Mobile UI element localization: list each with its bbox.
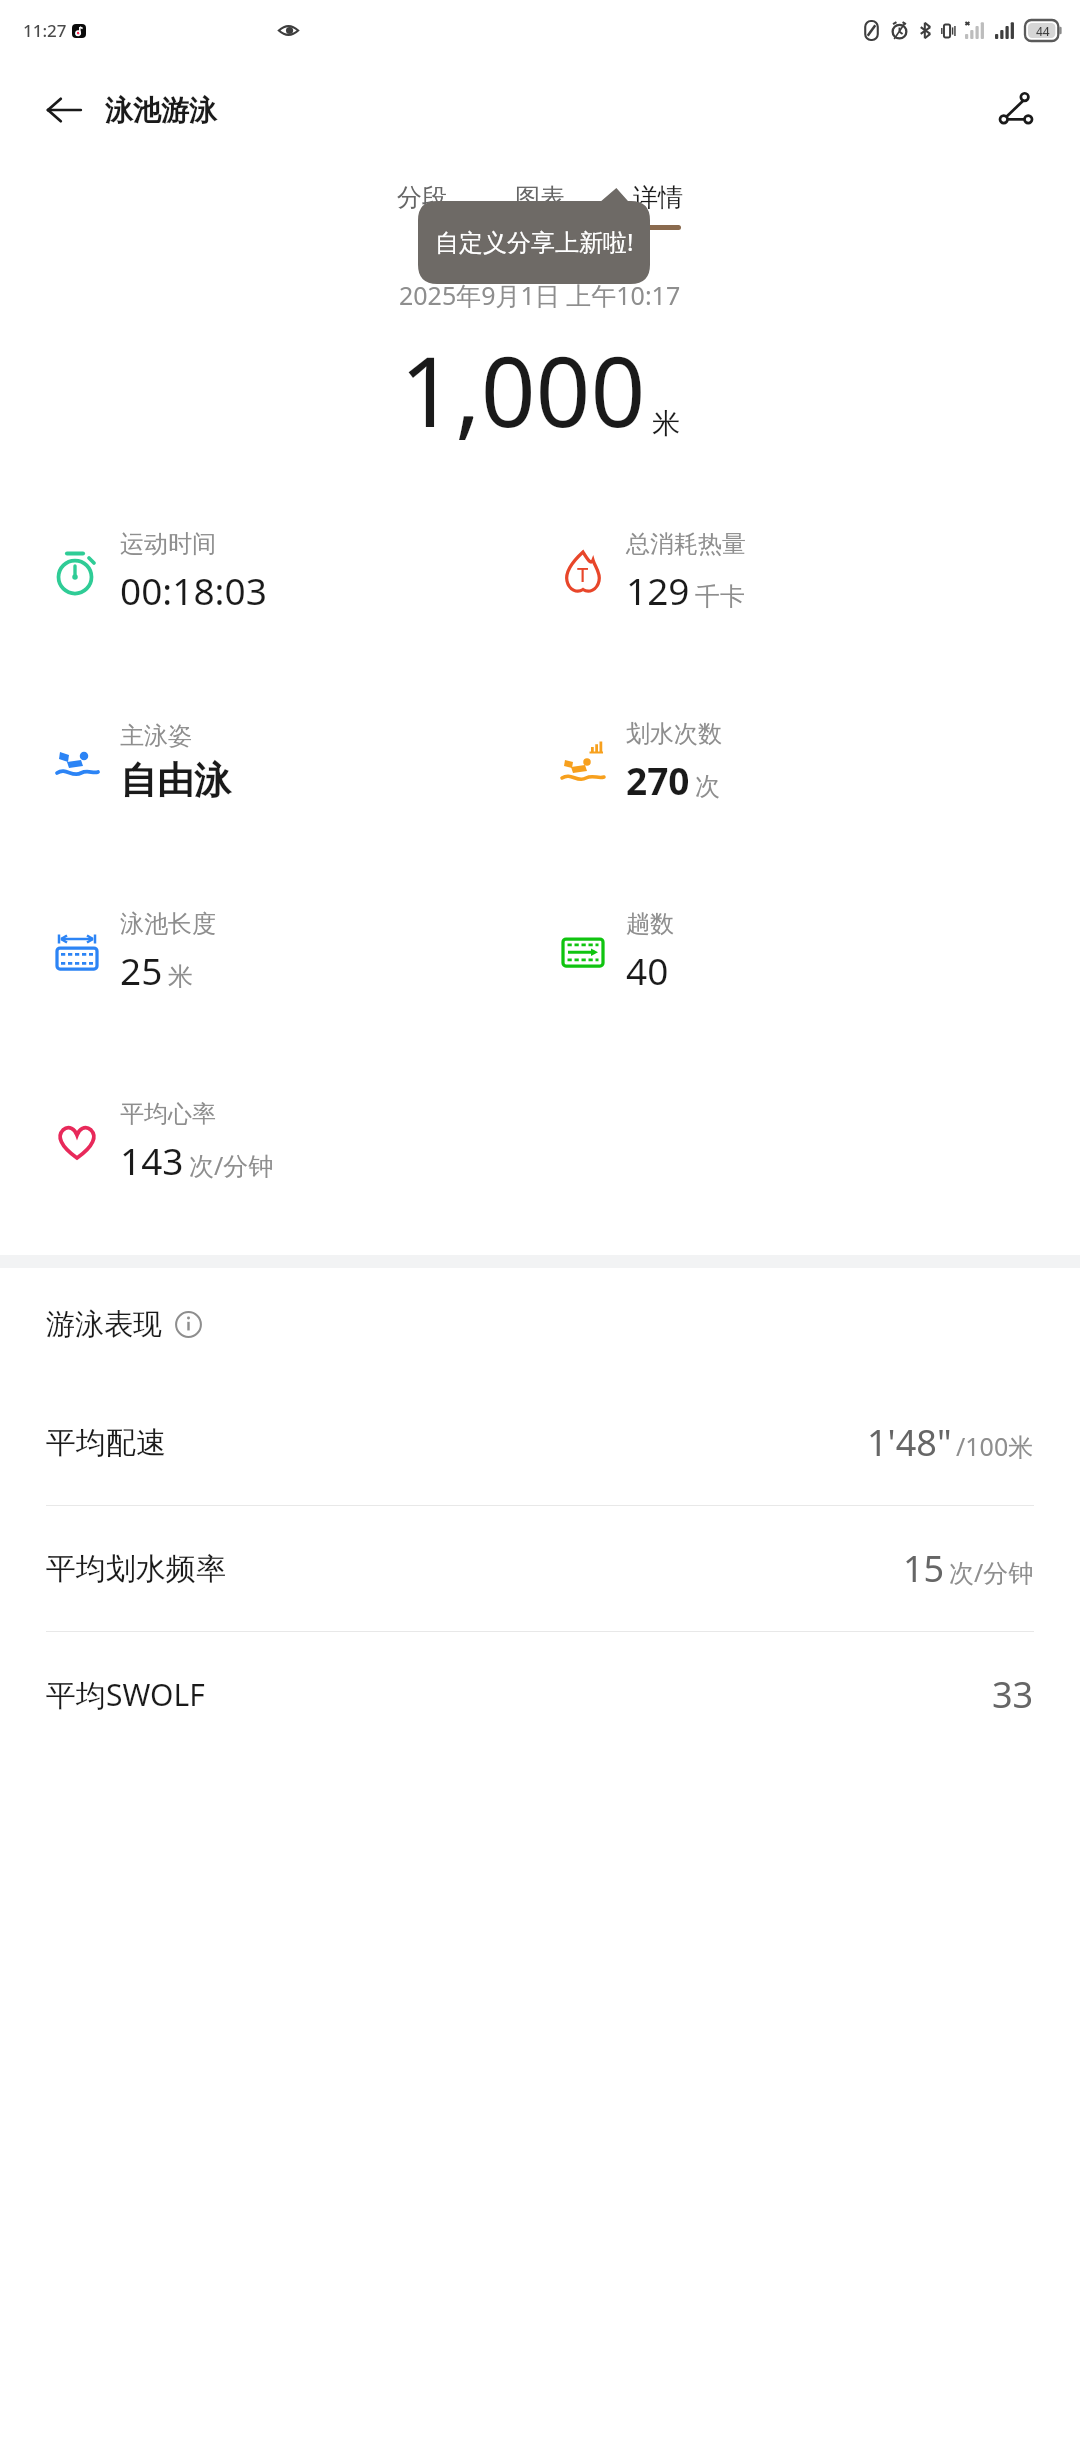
staticText: 1,000 [400,324,646,455]
staticText: 270 [626,755,690,805]
staticText: /100米 [956,1429,1034,1463]
staticText: 米 [652,406,680,441]
button[interactable]: 平均心率 [48,1047,540,1237]
button[interactable]: Info [172,1308,204,1340]
button[interactable]: 详情 [625,176,691,236]
staticText: 泳池游泳 [105,93,217,128]
button[interactable]: 分段 [389,176,455,236]
button[interactable]: Share [988,82,1044,138]
staticText: 15 [903,1544,945,1593]
staticText: 图表 [515,182,565,213]
staticText: T [577,561,589,588]
staticText: 129 [626,565,690,615]
button[interactable]: 运动时间 [48,477,540,667]
button[interactable]: 平均划水频率 [0,1506,1080,1632]
staticText: 主泳姿 [120,721,192,751]
button[interactable]: 图表 [507,176,573,236]
button[interactable]: 趟数 [554,857,1080,1047]
staticText: 游泳表现 [46,1306,162,1343]
button[interactable]: 平均配速 [0,1380,1080,1506]
staticText: 25 [120,945,163,995]
staticText: 自定义分享上新啦! [435,225,634,258]
staticText: 泳池长度 [120,909,216,939]
button[interactable]: 平均SWOLF [0,1632,1080,1757]
staticText: 分段 [397,182,447,213]
staticText: 详情 [633,182,683,213]
staticText: 自由泳 [120,757,231,804]
staticText: 00:18:03 [120,565,267,615]
staticText: 米 [168,961,193,992]
staticText: 平均划水频率 [46,1550,226,1588]
staticText: 趟数 [626,909,674,939]
staticText: 总消耗热量 [626,529,746,559]
button[interactable]: 划水次数 [554,667,1080,857]
button[interactable]: Back [38,84,90,136]
staticText: 次 [695,771,720,802]
staticText: 143 [120,1135,184,1185]
button[interactable]: T [554,477,1080,667]
staticText: 33 [992,1670,1034,1719]
staticText: 40 [626,945,669,995]
staticText: 1'48" [867,1418,952,1467]
staticText: 平均心率 [120,1099,216,1129]
staticText: 千卡 [695,581,745,612]
staticText: 划水次数 [626,719,722,749]
staticText: 11:27 [23,19,67,42]
staticText: 运动时间 [120,529,216,559]
button[interactable]: 主泳姿 [48,667,540,857]
staticText: 2025年9月1日 上午10:17 [399,278,681,312]
staticText: 平均配速 [46,1424,166,1462]
button[interactable]: 泳池长度 [48,857,540,1047]
staticText: 次/分钟 [189,1148,274,1182]
staticText: 次/分钟 [949,1555,1034,1589]
staticText: 平均SWOLF [46,1674,205,1715]
staticText: 44 [1036,23,1050,39]
